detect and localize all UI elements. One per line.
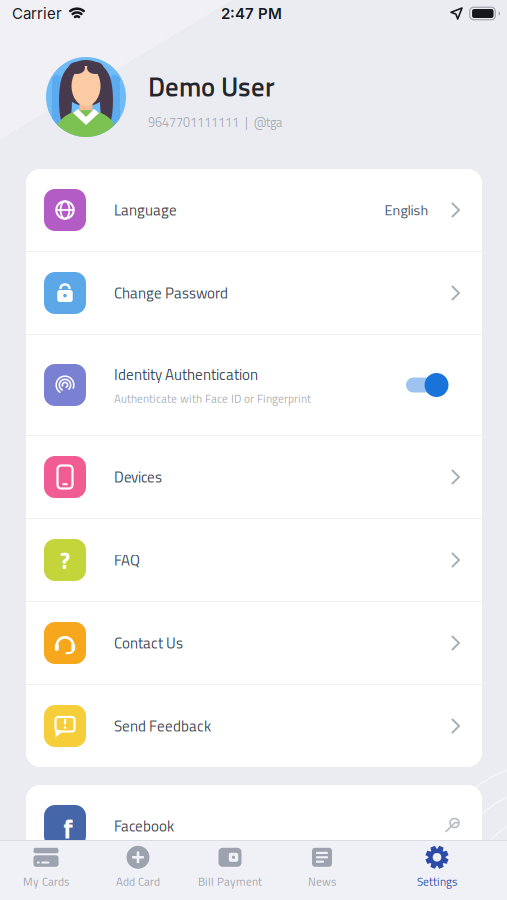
staticText: Change Password [114,281,228,304]
staticText: My Cards [23,873,69,890]
staticText: Send Feedback [114,714,211,737]
button[interactable]: ? [26,519,482,601]
button[interactable]: Change Password [26,252,482,334]
button[interactable]: Language [26,169,482,251]
button[interactable]: Bill Payment [184,840,276,896]
staticText: Add Card [116,873,160,890]
staticText: FAQ [114,548,140,571]
staticText: 9647701111111 | @tga [148,113,282,132]
staticText: Bill Payment [198,873,262,890]
button[interactable]: Contact Us [26,602,482,684]
button[interactable]: Send Feedback [26,685,482,767]
button[interactable]: Devices [26,436,482,518]
button[interactable]: f [26,785,482,867]
button[interactable]: News [276,840,368,896]
button[interactable]: Identity Authentication [26,335,482,435]
staticText: Settings [417,873,457,890]
staticText: News [308,873,336,890]
staticText: ? [60,542,70,578]
staticText: 2:47 PM [221,4,282,23]
staticText: English [384,199,428,221]
staticText: Devices [114,465,162,488]
staticText: f [63,807,73,849]
staticText: Language [114,198,177,221]
staticText: Contact Us [114,631,183,654]
button[interactable]: Settings [391,840,483,896]
button[interactable]: My Cards [0,840,92,896]
staticText: Authenticate with Face ID or Fingerprint [114,390,311,407]
staticText: Carrier [12,4,62,23]
staticText: Demo User [148,66,275,107]
button[interactable]: Profile photo [46,57,126,137]
staticText: Identity Authentication [114,363,258,386]
staticText: Facebook [114,814,174,837]
button[interactable]: Add Card [92,840,184,896]
